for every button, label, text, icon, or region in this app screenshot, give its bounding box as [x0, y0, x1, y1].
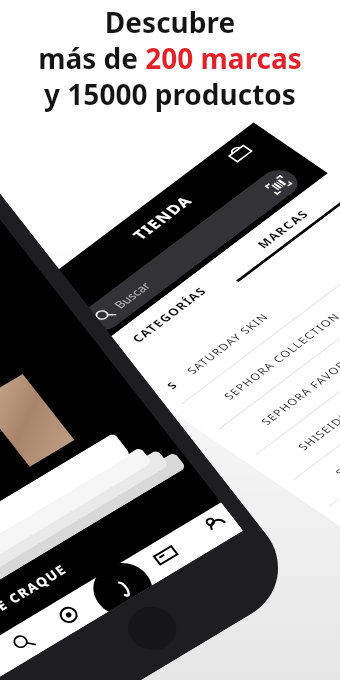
staticText: SEPHORA COLLECTION: [218, 309, 340, 402]
button[interactable]: S: [131, 205, 340, 412]
staticText: Descubre más de 200 marcas y 15000 produ…: [38, 3, 302, 113]
staticText: SHISEIDO: [293, 408, 340, 453]
button[interactable]: Buscar: [0, 619, 49, 666]
button[interactable]: Botón de inicio: [113, 592, 192, 665]
button[interactable]: SHISEIDO: [243, 281, 340, 488]
button[interactable]: SKINCEUTICALS: [317, 332, 340, 539]
staticText: SEPHORA FAVORITES: [255, 342, 340, 428]
button[interactable]: Inicio: [77, 545, 159, 621]
button[interactable]: SEPHORA COLLECTION: [168, 230, 340, 437]
button[interactable]: SISLEY: [280, 306, 340, 513]
button[interactable]: Perfil: [190, 501, 241, 548]
staticText: Buscar: [109, 278, 155, 311]
button[interactable]: SEPHORA FAVORITES: [206, 255, 340, 462]
button[interactable]: Ofertas: [43, 591, 94, 639]
staticText: SATURDAY SKIN: [181, 310, 273, 377]
staticText: SISLEY: [331, 445, 340, 478]
button[interactable]: Bolsa de compras: [216, 136, 262, 169]
staticText: JE CRAQUE: [0, 549, 73, 629]
button[interactable]: Tarjeta: [140, 532, 191, 579]
staticText: MARCAS: [252, 206, 313, 251]
staticText: TIENDA: [127, 191, 198, 243]
button[interactable]: Escanear código: [261, 173, 294, 197]
staticText: S: [163, 379, 181, 392]
button[interactable]: Buscar: [73, 164, 309, 336]
staticText: CATEGORÍAS: [126, 283, 211, 345]
